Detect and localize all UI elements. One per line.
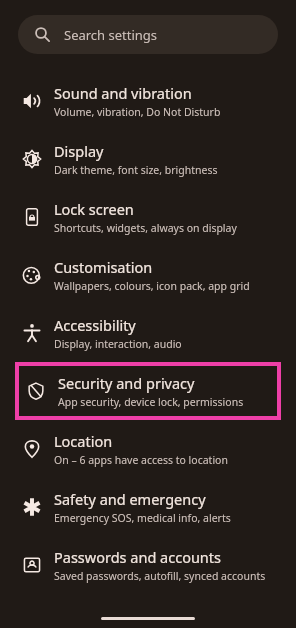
button[interactable]: Security and privacy bbox=[19, 366, 277, 416]
staticText: Search settings bbox=[64, 26, 158, 44]
staticText: Location bbox=[54, 431, 113, 451]
staticText: Dark theme, font size, brightness bbox=[54, 163, 218, 177]
button[interactable]: Search bbox=[18, 15, 278, 54]
staticText: Security and privacy bbox=[58, 373, 195, 393]
button[interactable]: Customisation bbox=[0, 246, 296, 304]
staticText: Saved passwords, autofill, synced accoun… bbox=[54, 569, 266, 583]
staticText: Display, interaction, audio bbox=[54, 337, 182, 351]
button[interactable]: Sound and vibration bbox=[0, 72, 296, 130]
button[interactable]: Accessibility bbox=[0, 304, 296, 362]
staticText: Emergency SOS, medical info, alerts bbox=[54, 511, 231, 525]
staticText: App security, device lock, permissions bbox=[58, 395, 244, 409]
staticText: Accessibility bbox=[54, 315, 136, 335]
staticText: Lock screen bbox=[54, 199, 134, 219]
staticText: Sound and vibration bbox=[54, 83, 192, 103]
staticText: Passwords and accounts bbox=[54, 547, 222, 567]
staticText: Volume, vibration, Do Not Disturb bbox=[54, 105, 221, 119]
staticText: Wallpapers, colours, icon pack, app grid bbox=[54, 279, 250, 293]
staticText: Shortcuts, widgets, always on display bbox=[54, 221, 237, 235]
staticText: Customisation bbox=[54, 257, 153, 277]
other: Search bbox=[35, 27, 50, 42]
staticText: Safety and emergency bbox=[54, 489, 206, 509]
staticText: Display bbox=[54, 141, 104, 161]
button[interactable]: Display bbox=[0, 130, 296, 188]
button[interactable]: Safety and emergency bbox=[0, 478, 296, 536]
button[interactable]: Location bbox=[0, 420, 296, 478]
staticText: On – 6 apps have access to location bbox=[54, 453, 228, 467]
button[interactable]: Lock screen bbox=[0, 188, 296, 246]
button[interactable]: Passwords and accounts bbox=[0, 536, 296, 594]
